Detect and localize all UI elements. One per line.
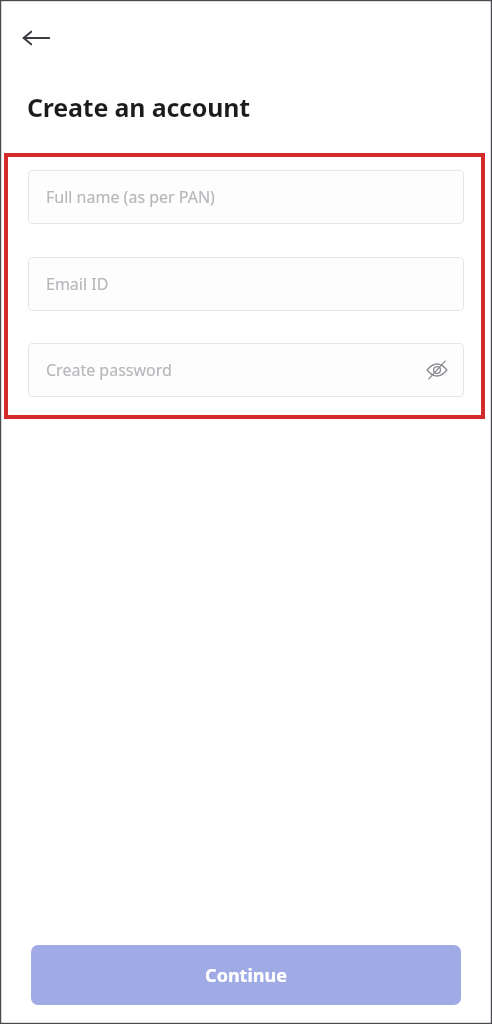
button[interactable]: Back <box>14 16 58 60</box>
staticText: Continue <box>205 963 287 988</box>
button[interactable]: Continue <box>31 945 461 1005</box>
button[interactable]: Email ID <box>28 257 464 311</box>
button[interactable]: Full name (as per PAN) <box>28 170 464 224</box>
staticText: Full name (as per PAN) <box>46 186 215 208</box>
staticText: Create an account <box>27 90 250 124</box>
staticText: Email ID <box>46 273 109 295</box>
staticText: Create password <box>46 359 172 381</box>
button[interactable]: Show password <box>422 355 452 385</box>
button[interactable]: Create password <box>28 343 464 397</box>
